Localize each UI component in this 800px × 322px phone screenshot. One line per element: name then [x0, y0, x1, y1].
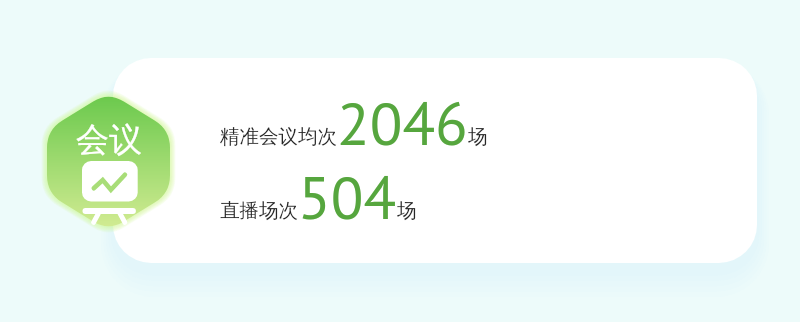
- button[interactable]: [113, 58, 757, 263]
- staticText: 场: [397, 198, 417, 223]
- staticText: 精准会议均次: [220, 124, 337, 149]
- staticText: 会议: [76, 119, 142, 161]
- button[interactable]: 会议: [33, 78, 184, 245]
- staticText: 场: [468, 124, 488, 149]
- staticText: 直播场次: [220, 198, 298, 223]
- staticText: 504: [298, 158, 397, 236]
- staticText: 2046: [337, 84, 468, 162]
